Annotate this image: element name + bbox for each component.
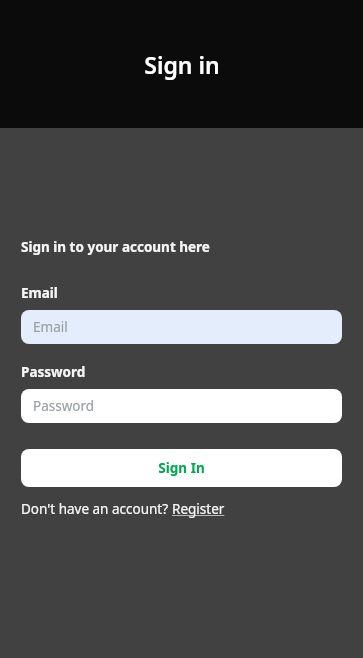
staticText: Password — [33, 397, 95, 415]
button[interactable]: Password input field — [21, 389, 342, 423]
staticText: Email — [21, 284, 58, 302]
button[interactable]: Register — [172, 500, 225, 518]
button[interactable]: Email input field — [21, 310, 342, 344]
staticText: Register — [172, 500, 225, 518]
staticText: Sign In — [158, 459, 205, 477]
staticText: Password — [21, 363, 86, 381]
button[interactable]: Sign In — [21, 449, 342, 487]
staticText: Don't have an account? — [21, 500, 172, 518]
staticText: Sign in — [144, 49, 220, 80]
staticText: Sign in to your account here — [21, 238, 210, 256]
staticText: Email — [33, 318, 68, 336]
